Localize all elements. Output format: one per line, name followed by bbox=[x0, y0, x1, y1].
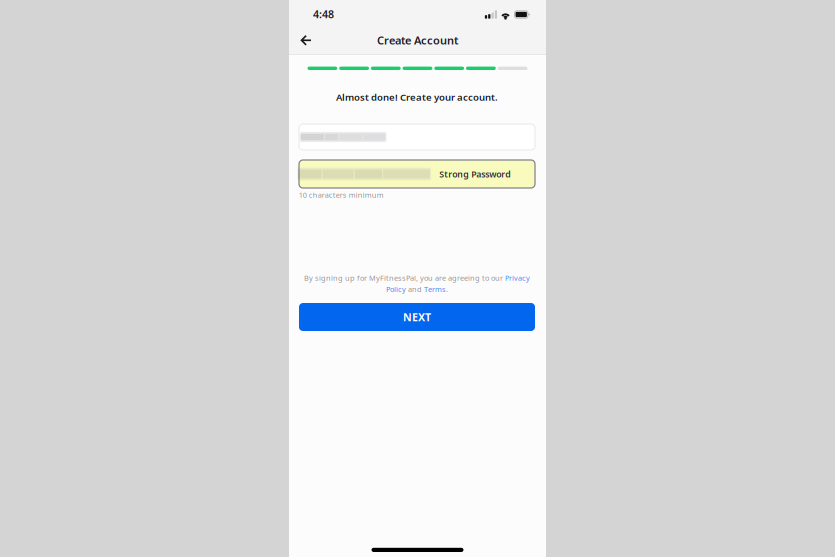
staticText: Almost done! Create your account. bbox=[336, 91, 498, 103]
button[interactable]: NEXT bbox=[299, 303, 535, 331]
button[interactable]: Email address bbox=[299, 124, 535, 150]
button[interactable]: Privacy bbox=[505, 273, 530, 283]
button[interactable]: Terms bbox=[424, 284, 446, 294]
staticText: Terms bbox=[424, 284, 446, 294]
staticText: Privacy bbox=[505, 273, 530, 283]
staticText: Create Account bbox=[377, 33, 458, 48]
staticText: Strong Password bbox=[439, 168, 511, 180]
button[interactable]: Policy bbox=[386, 284, 406, 294]
button[interactable]: Password bbox=[299, 160, 535, 188]
staticText: Policy bbox=[386, 284, 406, 294]
button[interactable]: Back bbox=[292, 27, 319, 53]
staticText: NEXT bbox=[403, 310, 431, 324]
staticText: 10 characters minimum bbox=[299, 190, 384, 200]
staticText: By signing up for MyFitnessPal, you are … bbox=[304, 273, 505, 283]
staticText: . bbox=[446, 284, 448, 294]
staticText: and bbox=[406, 284, 424, 294]
staticText: 4:48 bbox=[313, 7, 334, 21]
